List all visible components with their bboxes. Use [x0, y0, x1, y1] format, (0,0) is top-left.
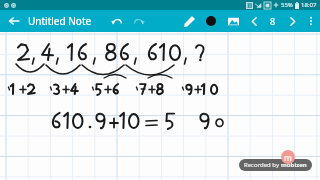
button[interactable]: 8: [264, 10, 282, 32]
button[interactable]: More options: [302, 10, 320, 32]
button[interactable]: Previous page: [244, 10, 264, 32]
staticText: 18:07: [301, 1, 317, 9]
button[interactable]: Undo: [106, 10, 128, 32]
button[interactable]: Pen: [178, 10, 200, 32]
button[interactable]: Next page: [282, 10, 302, 32]
staticText: mobizen: [281, 161, 307, 169]
button[interactable]: Colour: [200, 10, 222, 32]
staticText: 8: [270, 15, 276, 27]
staticText: Untitled Note: [28, 14, 92, 28]
button[interactable]: Redo: [128, 10, 150, 32]
button[interactable]: Back: [0, 10, 28, 32]
staticText: 55%: [281, 1, 293, 9]
staticText: Recorded by: [244, 161, 281, 169]
staticText: m: [284, 152, 292, 163]
button[interactable]: Insert image: [222, 10, 244, 32]
